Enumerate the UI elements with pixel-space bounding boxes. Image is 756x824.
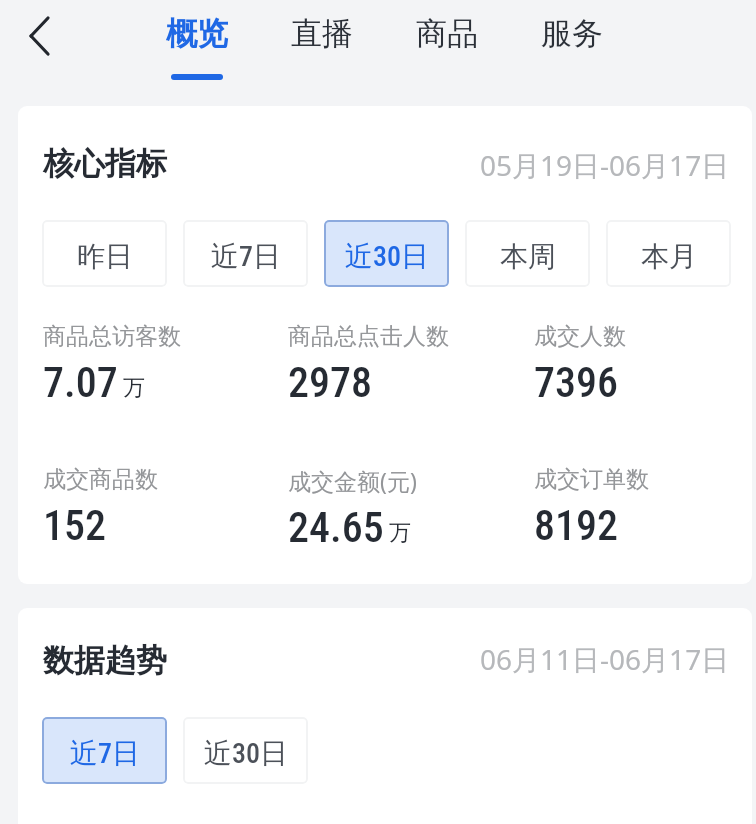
staticText: 7396 (534, 358, 618, 407)
staticText: 06月11日-06月17日 (480, 640, 730, 678)
staticText: 昨日 (77, 239, 133, 274)
button[interactable]: 近30日 (324, 220, 449, 287)
staticText: 成交金额(元) (288, 465, 417, 496)
staticText: 万 (123, 374, 145, 402)
staticText: 本月 (641, 239, 697, 274)
button[interactable]: 近30日 (183, 717, 308, 784)
staticText: 2978 (288, 358, 372, 407)
button[interactable]: 本周 (465, 220, 590, 287)
staticText: 7.07 (43, 358, 118, 407)
button[interactable]: 直播 (259, 14, 384, 80)
staticText: 成交订单数 (534, 465, 649, 494)
staticText: 05月19日-06月17日 (480, 146, 730, 184)
staticText: 8192 (534, 501, 618, 550)
staticText: 成交商品数 (43, 465, 158, 494)
staticText: 商品 (416, 14, 478, 53)
staticText: 数据趋势 (43, 641, 167, 680)
staticText: 商品总访客数 (43, 322, 181, 351)
staticText: 152 (43, 501, 106, 550)
staticText: 服务 (541, 14, 603, 53)
button[interactable]: 概览 (134, 14, 259, 80)
staticText: 近7日 (70, 736, 140, 771)
staticText: 核心指标 (43, 144, 167, 183)
staticText: 近7日 (211, 239, 281, 274)
button[interactable]: 商品 (384, 14, 509, 80)
button[interactable]: 本月 (606, 220, 731, 287)
button[interactable]: 昨日 (42, 220, 167, 287)
button[interactable]: 服务 (509, 14, 634, 80)
staticText: 商品总点击人数 (288, 322, 449, 351)
staticText: 成交人数 (534, 322, 626, 351)
staticText: 近30日 (204, 736, 288, 771)
button[interactable]: 近7日 (183, 220, 308, 287)
staticText: 近30日 (345, 239, 429, 274)
staticText: 本周 (500, 239, 556, 274)
staticText: 万 (389, 519, 411, 547)
button[interactable]: Back (12, 10, 64, 62)
button[interactable]: 近7日 (42, 717, 167, 784)
staticText: 24.65 (288, 503, 384, 552)
staticText: 概览 (166, 14, 228, 53)
staticText: 直播 (291, 14, 353, 53)
